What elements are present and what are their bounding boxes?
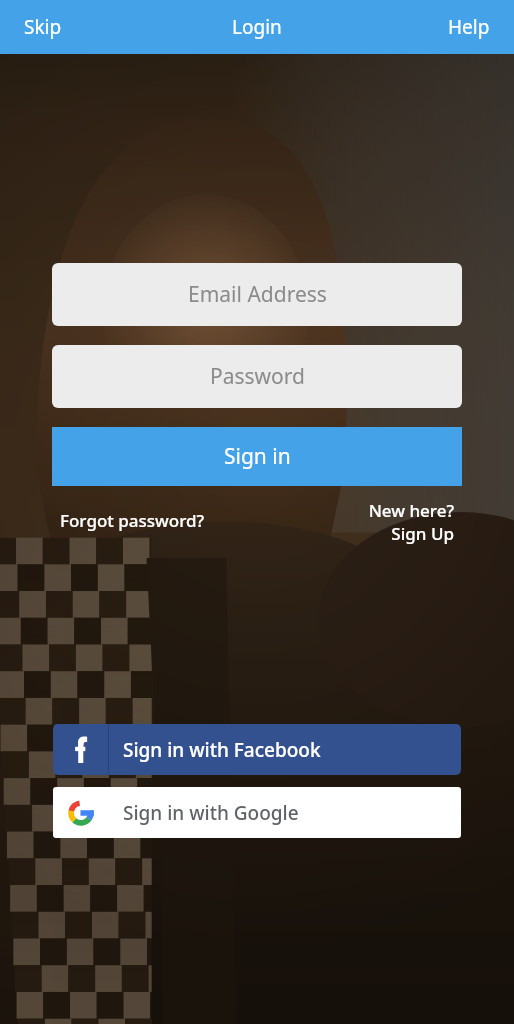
staticText: Forgot password?	[60, 509, 205, 532]
other: Facebook	[72, 736, 89, 763]
staticText: Skip	[24, 14, 62, 40]
button[interactable]: Skip	[16, 8, 70, 46]
button[interactable]: Google	[53, 787, 461, 838]
other: Google	[68, 800, 94, 826]
button[interactable]: Sign in	[52, 427, 462, 486]
button[interactable]: Help	[440, 8, 498, 46]
staticText: Sign in with Google	[123, 800, 299, 826]
button[interactable]: Login	[224, 8, 290, 46]
button[interactable]: New here?	[368, 498, 454, 546]
staticText: Sign in with Facebook	[123, 737, 321, 763]
button[interactable]: Email Address	[52, 263, 462, 326]
staticText: Sign in	[224, 442, 291, 471]
button[interactable]: Forgot password?	[60, 507, 205, 534]
button[interactable]: Password	[52, 345, 462, 408]
staticText: Sign Up	[391, 522, 454, 545]
button[interactable]: Facebook	[53, 724, 461, 775]
staticText: Login	[232, 14, 282, 40]
staticText: Password	[210, 362, 305, 391]
staticText: Email Address	[188, 280, 327, 309]
staticText: New here?	[368, 499, 454, 522]
staticText: Help	[448, 14, 490, 40]
